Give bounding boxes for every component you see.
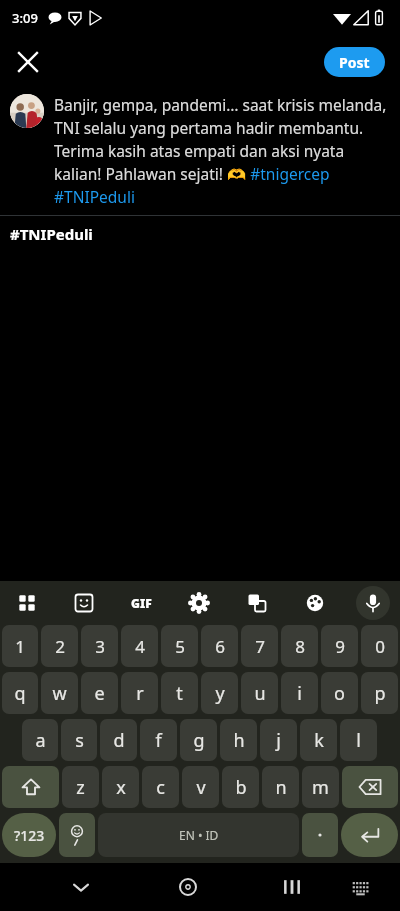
button[interactable]: v bbox=[182, 766, 219, 808]
staticText: k bbox=[314, 728, 324, 753]
button[interactable]: h bbox=[220, 719, 257, 761]
button[interactable]: 3 bbox=[81, 625, 118, 667]
button[interactable]: #TNIPeduli bbox=[0, 216, 400, 252]
staticText: #TNIPeduli bbox=[10, 224, 93, 244]
staticText: c bbox=[156, 775, 165, 800]
button[interactable]: r bbox=[121, 672, 158, 714]
button[interactable]: Recent apps bbox=[270, 865, 314, 909]
staticText: z bbox=[76, 775, 85, 800]
button[interactable]: i bbox=[281, 672, 318, 714]
staticText: t bbox=[176, 681, 183, 706]
button[interactable]: n bbox=[262, 766, 299, 808]
button[interactable]: Stickers bbox=[67, 586, 101, 620]
button[interactable]: Settings bbox=[182, 586, 216, 620]
button[interactable]: 6 bbox=[201, 625, 238, 667]
staticText: 3:09 bbox=[12, 9, 38, 27]
button[interactable]: w bbox=[41, 672, 78, 714]
staticText: e bbox=[94, 681, 105, 706]
button[interactable]: Shift bbox=[2, 766, 59, 808]
staticText: d bbox=[113, 728, 125, 753]
button[interactable]: z bbox=[62, 766, 99, 808]
button[interactable]: m bbox=[302, 766, 339, 808]
staticText: Banjir, gempa, pandemi… saat krisis mela… bbox=[54, 94, 392, 208]
staticText: 9 bbox=[335, 635, 345, 658]
button[interactable]: b bbox=[222, 766, 259, 808]
button[interactable]: e bbox=[81, 672, 118, 714]
staticText: 2 bbox=[55, 635, 65, 658]
button[interactable]: Space bbox=[98, 813, 299, 857]
button[interactable]: c bbox=[142, 766, 179, 808]
staticText: 3 bbox=[95, 635, 105, 658]
staticText: 0 bbox=[375, 635, 385, 658]
button[interactable]: Themes bbox=[298, 586, 332, 620]
button[interactable]: 9 bbox=[321, 625, 358, 667]
button[interactable]: d bbox=[100, 719, 137, 761]
staticText: x bbox=[116, 775, 126, 800]
staticText: r bbox=[136, 681, 144, 706]
button[interactable]: Emoji bbox=[59, 813, 95, 857]
button[interactable]: Backspace bbox=[342, 766, 398, 808]
staticText: m bbox=[312, 775, 329, 800]
button[interactable]: ?123 bbox=[2, 813, 56, 857]
button[interactable]: 1 bbox=[2, 625, 38, 667]
button[interactable]: Enter bbox=[341, 813, 398, 857]
staticText: EN • ID bbox=[179, 827, 219, 843]
staticText: Post bbox=[339, 53, 370, 72]
staticText: y bbox=[215, 681, 225, 706]
button[interactable]: Post bbox=[324, 47, 385, 77]
button[interactable]: Translate bbox=[240, 586, 274, 620]
button[interactable]: t bbox=[161, 672, 198, 714]
staticText: a bbox=[35, 728, 46, 753]
button[interactable]: o bbox=[321, 672, 358, 714]
button[interactable]: s bbox=[61, 719, 97, 761]
staticText: s bbox=[75, 728, 84, 753]
staticText: w bbox=[52, 681, 67, 706]
button[interactable]: Home bbox=[166, 865, 210, 909]
button[interactable]: p bbox=[361, 672, 398, 714]
button[interactable]: 8 bbox=[281, 625, 318, 667]
button[interactable]: q bbox=[2, 672, 38, 714]
button[interactable]: y bbox=[201, 672, 238, 714]
button[interactable]: j bbox=[260, 719, 297, 761]
button[interactable]: u bbox=[241, 672, 278, 714]
staticText: v bbox=[196, 775, 206, 800]
staticText: o bbox=[334, 681, 345, 706]
button[interactable]: Voice input bbox=[356, 586, 390, 620]
staticText: f bbox=[155, 728, 162, 753]
staticText: 1 bbox=[15, 635, 25, 658]
button[interactable]: Switch keyboard bbox=[340, 867, 380, 907]
staticText: b bbox=[235, 775, 247, 800]
button[interactable]: x bbox=[102, 766, 139, 808]
staticText: 4 bbox=[135, 635, 145, 658]
staticText: 8 bbox=[295, 635, 305, 658]
button[interactable]: 2 bbox=[41, 625, 78, 667]
button[interactable]: 7 bbox=[241, 625, 278, 667]
button[interactable]: GIF bbox=[124, 586, 158, 620]
staticText: i bbox=[297, 681, 302, 706]
button[interactable]: f bbox=[140, 719, 177, 761]
button[interactable]: 5 bbox=[161, 625, 198, 667]
staticText: u bbox=[254, 681, 266, 706]
button[interactable]: Apps bbox=[10, 586, 44, 620]
button[interactable]: 0 bbox=[361, 625, 398, 667]
staticText: l bbox=[356, 728, 361, 753]
button[interactable]: a bbox=[22, 719, 58, 761]
staticText: p bbox=[374, 681, 386, 706]
staticText: 5 bbox=[175, 635, 185, 658]
button[interactable]: g bbox=[180, 719, 217, 761]
staticText: j bbox=[276, 728, 281, 753]
staticText: 7 bbox=[255, 635, 265, 658]
button[interactable]: Profile picture bbox=[10, 94, 44, 128]
staticText: ?123 bbox=[14, 826, 45, 845]
button[interactable]: l bbox=[340, 719, 377, 761]
staticText: g bbox=[193, 728, 205, 753]
button[interactable]: Close bbox=[8, 42, 48, 82]
button[interactable]: k bbox=[300, 719, 337, 761]
staticText: n bbox=[275, 775, 287, 800]
button[interactable]: Period bbox=[302, 813, 338, 857]
staticText: q bbox=[14, 681, 26, 706]
button[interactable]: 4 bbox=[121, 625, 158, 667]
staticText: GIF bbox=[131, 595, 152, 611]
staticText: h bbox=[233, 728, 245, 753]
button[interactable]: Hide keyboard bbox=[59, 865, 103, 909]
